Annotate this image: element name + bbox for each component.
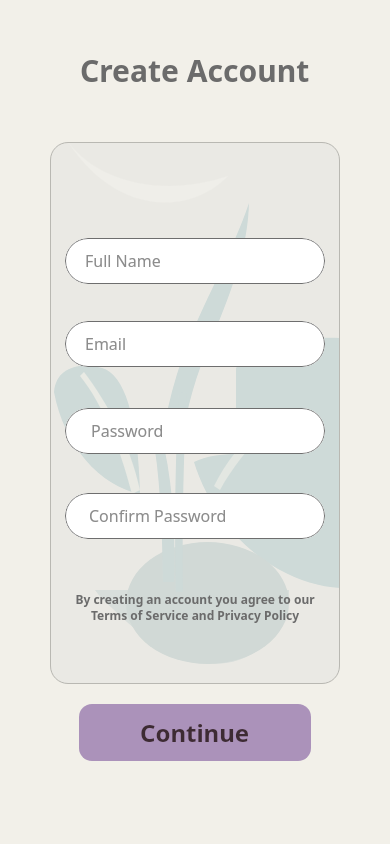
- button[interactable]: Email: [65, 321, 325, 367]
- staticText: Email: [85, 333, 127, 355]
- staticText: Confirm Password: [89, 505, 227, 527]
- staticText: By creating an account you agree to our …: [50, 591, 340, 623]
- button[interactable]: Confirm Password: [65, 493, 325, 539]
- staticText: Password: [91, 420, 164, 442]
- button[interactable]: Password: [65, 408, 325, 454]
- staticText: Create Account: [80, 50, 310, 91]
- button[interactable]: Continue: [79, 704, 311, 761]
- button[interactable]: Full Name: [65, 238, 325, 284]
- staticText: Continue: [140, 716, 250, 749]
- staticText: Full Name: [85, 250, 161, 272]
